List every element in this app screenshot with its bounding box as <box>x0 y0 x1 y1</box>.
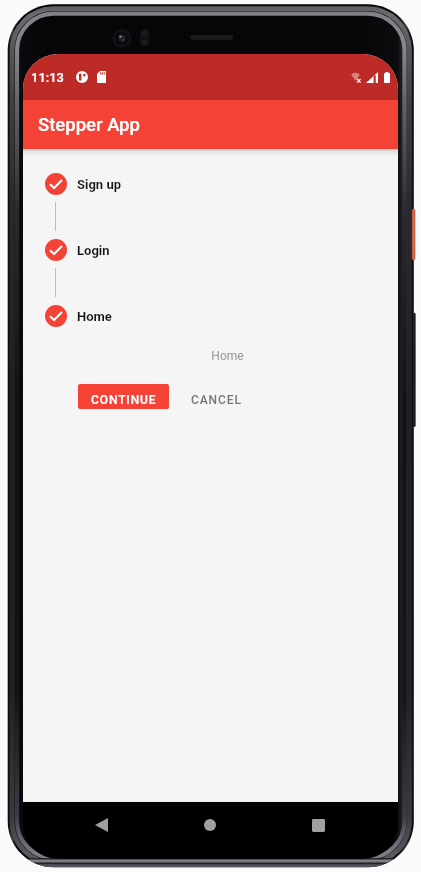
staticText: Login <box>77 243 110 258</box>
staticText: 11:13 <box>31 70 65 85</box>
button[interactable]: Recent apps <box>294 801 342 849</box>
button[interactable] <box>45 239 67 261</box>
staticText: CONTINUE <box>91 393 157 407</box>
button[interactable]: CANCEL <box>169 383 248 409</box>
staticText: CANCEL <box>191 393 242 407</box>
staticText: Stepper App <box>38 114 140 136</box>
button[interactable]: CONTINUE <box>78 384 169 409</box>
staticText: Home <box>73 349 382 363</box>
staticText: Home <box>77 309 112 324</box>
button[interactable] <box>45 305 67 327</box>
staticText: Sign up <box>77 177 121 192</box>
button[interactable]: Back <box>77 801 125 849</box>
button[interactable]: Home <box>186 801 234 849</box>
button[interactable] <box>45 173 67 195</box>
